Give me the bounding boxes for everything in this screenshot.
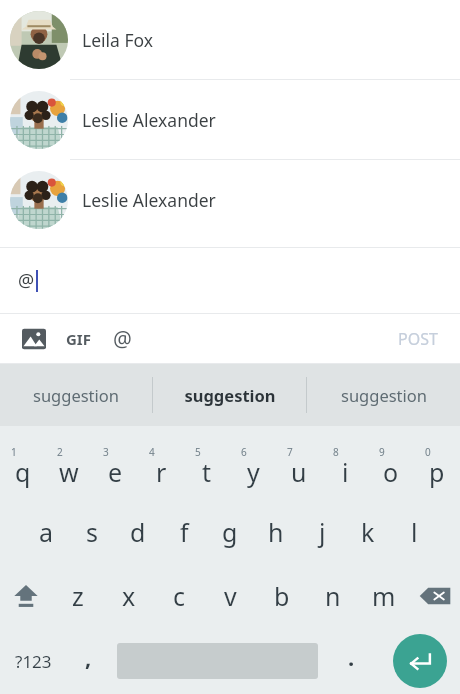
button[interactable]: 7 bbox=[276, 434, 322, 500]
button[interactable]: Leslie Alexander bbox=[0, 160, 460, 239]
staticText: Leila Fox bbox=[82, 28, 154, 52]
button[interactable]: s bbox=[69, 500, 115, 564]
staticText: b bbox=[274, 579, 290, 613]
button[interactable]: 6 bbox=[230, 434, 276, 500]
staticText: 1 bbox=[11, 445, 17, 459]
button[interactable]: . bbox=[323, 628, 379, 694]
button[interactable]: f bbox=[161, 500, 207, 564]
staticText: 0 bbox=[425, 445, 431, 459]
staticText: 9 bbox=[379, 445, 385, 459]
staticText: 3 bbox=[103, 445, 109, 459]
staticText: f bbox=[180, 515, 189, 549]
button[interactable]: x bbox=[103, 564, 154, 628]
button[interactable]: , bbox=[66, 628, 111, 694]
button[interactable]: a bbox=[23, 500, 69, 564]
staticText: GIF bbox=[66, 329, 91, 349]
button[interactable]: Enter bbox=[379, 628, 460, 694]
staticText: q bbox=[15, 455, 31, 489]
button[interactable]: m bbox=[358, 564, 409, 628]
staticText: c bbox=[173, 579, 186, 613]
staticText: u bbox=[291, 455, 307, 489]
button[interactable]: 5 bbox=[184, 434, 230, 500]
staticText: v bbox=[224, 579, 237, 613]
staticText: 5 bbox=[195, 445, 201, 459]
button[interactable]: Leila Fox bbox=[0, 0, 460, 79]
button[interactable]: 2 bbox=[46, 434, 92, 500]
button[interactable]: l bbox=[391, 500, 437, 564]
staticText: Leslie Alexander bbox=[82, 108, 216, 132]
staticText: 7 bbox=[287, 445, 293, 459]
staticText: o bbox=[383, 455, 399, 489]
button[interactable]: @ bbox=[0, 248, 460, 313]
button[interactable]: Space bbox=[111, 628, 323, 694]
button[interactable]: 0 bbox=[414, 434, 460, 500]
button[interactable]: h bbox=[253, 500, 299, 564]
button[interactable]: b bbox=[256, 564, 307, 628]
staticText: 8 bbox=[333, 445, 339, 459]
button[interactable]: v bbox=[205, 564, 256, 628]
staticText: . bbox=[348, 642, 355, 672]
staticText: ?123 bbox=[15, 650, 52, 673]
staticText: suggestion bbox=[33, 384, 119, 406]
staticText: 2 bbox=[57, 445, 63, 459]
button[interactable]: GIF bbox=[56, 317, 100, 361]
staticText: @ bbox=[18, 268, 35, 293]
button[interactable]: POST bbox=[392, 320, 444, 358]
button[interactable]: d bbox=[115, 500, 161, 564]
staticText: l bbox=[411, 515, 418, 549]
staticText: m bbox=[372, 579, 396, 613]
staticText: t bbox=[202, 455, 212, 489]
button[interactable]: ?123 bbox=[0, 628, 66, 694]
button[interactable]: k bbox=[345, 500, 391, 564]
button[interactable]: g bbox=[207, 500, 253, 564]
staticText: h bbox=[268, 515, 284, 549]
button[interactable]: Leslie Alexander bbox=[0, 80, 460, 159]
staticText: x bbox=[122, 579, 136, 613]
button[interactable]: z bbox=[52, 564, 103, 628]
button[interactable]: 8 bbox=[322, 434, 368, 500]
button[interactable]: j bbox=[299, 500, 345, 564]
staticText: i bbox=[342, 455, 349, 489]
staticText: , bbox=[85, 642, 92, 672]
staticText: k bbox=[361, 515, 375, 549]
staticText: z bbox=[72, 579, 84, 613]
button[interactable]: suggestion bbox=[307, 364, 460, 426]
button[interactable]: c bbox=[154, 564, 205, 628]
staticText: e bbox=[108, 455, 123, 489]
staticText: suggestion bbox=[341, 384, 427, 406]
button[interactable]: suggestion bbox=[0, 364, 152, 426]
staticText: d bbox=[130, 515, 146, 549]
staticText: r bbox=[156, 455, 167, 489]
button[interactable]: Shift bbox=[0, 564, 52, 628]
staticText: p bbox=[429, 455, 445, 489]
staticText: 4 bbox=[149, 445, 155, 459]
staticText: g bbox=[222, 515, 238, 549]
staticText: suggestion bbox=[184, 384, 276, 406]
staticText: s bbox=[86, 515, 98, 549]
staticText: j bbox=[319, 515, 326, 549]
button[interactable]: suggestion bbox=[153, 364, 306, 426]
staticText: @ bbox=[113, 325, 132, 354]
button[interactable]: Backspace bbox=[409, 564, 460, 628]
button[interactable]: Mention bbox=[100, 317, 144, 361]
staticText: y bbox=[247, 455, 260, 489]
staticText: 6 bbox=[241, 445, 247, 459]
button[interactable]: 4 bbox=[138, 434, 184, 500]
staticText: Leslie Alexander bbox=[82, 188, 216, 212]
button[interactable]: n bbox=[307, 564, 358, 628]
staticText: n bbox=[325, 579, 341, 613]
button[interactable]: Add image bbox=[12, 317, 56, 361]
button[interactable]: 1 bbox=[0, 434, 46, 500]
staticText: w bbox=[59, 455, 79, 489]
button[interactable]: 9 bbox=[368, 434, 414, 500]
staticText: a bbox=[39, 515, 54, 549]
button[interactable]: 3 bbox=[92, 434, 138, 500]
staticText: POST bbox=[398, 328, 438, 350]
